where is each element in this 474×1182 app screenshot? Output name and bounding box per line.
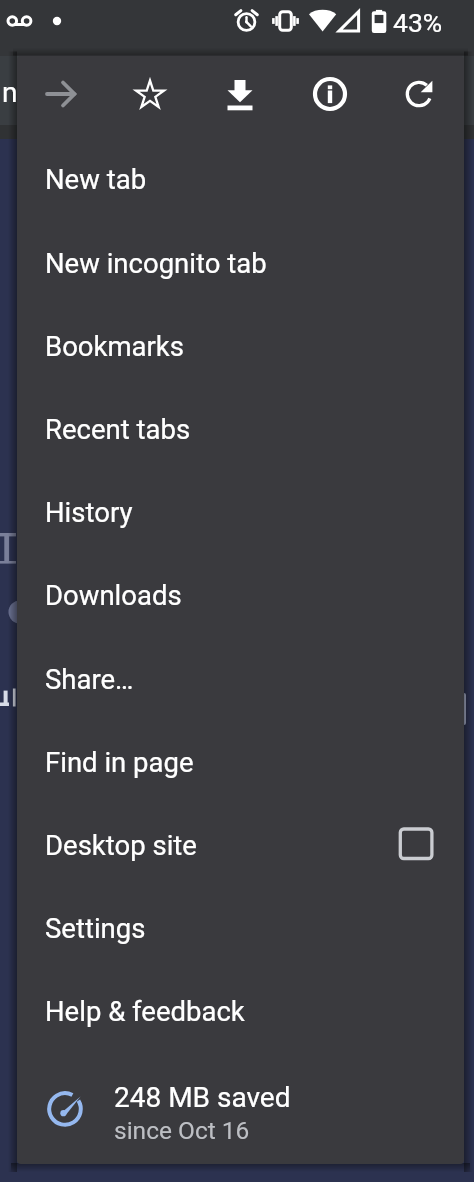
- button[interactable]: Download page: [217, 71, 263, 117]
- button[interactable]: 248 MB saved: [17, 1051, 464, 1164]
- button[interactable]: New tab: [17, 136, 464, 219]
- button[interactable]: Settings: [17, 885, 464, 968]
- staticText: New tab: [45, 163, 147, 195]
- staticText: since Oct 16: [114, 1116, 250, 1145]
- button[interactable]: Reload: [396, 71, 442, 117]
- button[interactable]: Find in page: [17, 719, 464, 802]
- button[interactable]: Desktop site: [17, 802, 464, 885]
- button[interactable]: Bookmarks: [17, 303, 464, 386]
- button[interactable]: Page info: [307, 71, 353, 117]
- button[interactable]: Share…: [17, 636, 464, 719]
- staticText: Bookmarks: [45, 330, 184, 362]
- staticText: 43%: [393, 7, 443, 38]
- staticText: Share…: [45, 663, 134, 695]
- button[interactable]: Recent tabs: [17, 386, 464, 469]
- staticText: Settings: [45, 912, 146, 944]
- staticText: 248 MB saved: [114, 1081, 291, 1114]
- staticText: Find in page: [45, 746, 194, 778]
- button[interactable]: Bookmark this page: [127, 71, 173, 117]
- staticText: Help & feedback: [45, 995, 245, 1027]
- button[interactable]: Help & feedback: [17, 968, 464, 1051]
- staticText: History: [45, 496, 133, 528]
- staticText: Downloads: [45, 579, 182, 611]
- staticText: Recent tabs: [45, 413, 191, 445]
- staticText: n: [2, 76, 18, 109]
- staticText: New incognito tab: [45, 247, 267, 279]
- staticText: Desktop site: [45, 829, 197, 861]
- button[interactable]: Forward: [38, 71, 84, 117]
- button[interactable]: New incognito tab: [17, 220, 464, 303]
- button[interactable]: Downloads: [17, 552, 464, 635]
- button[interactable]: History: [17, 469, 464, 552]
